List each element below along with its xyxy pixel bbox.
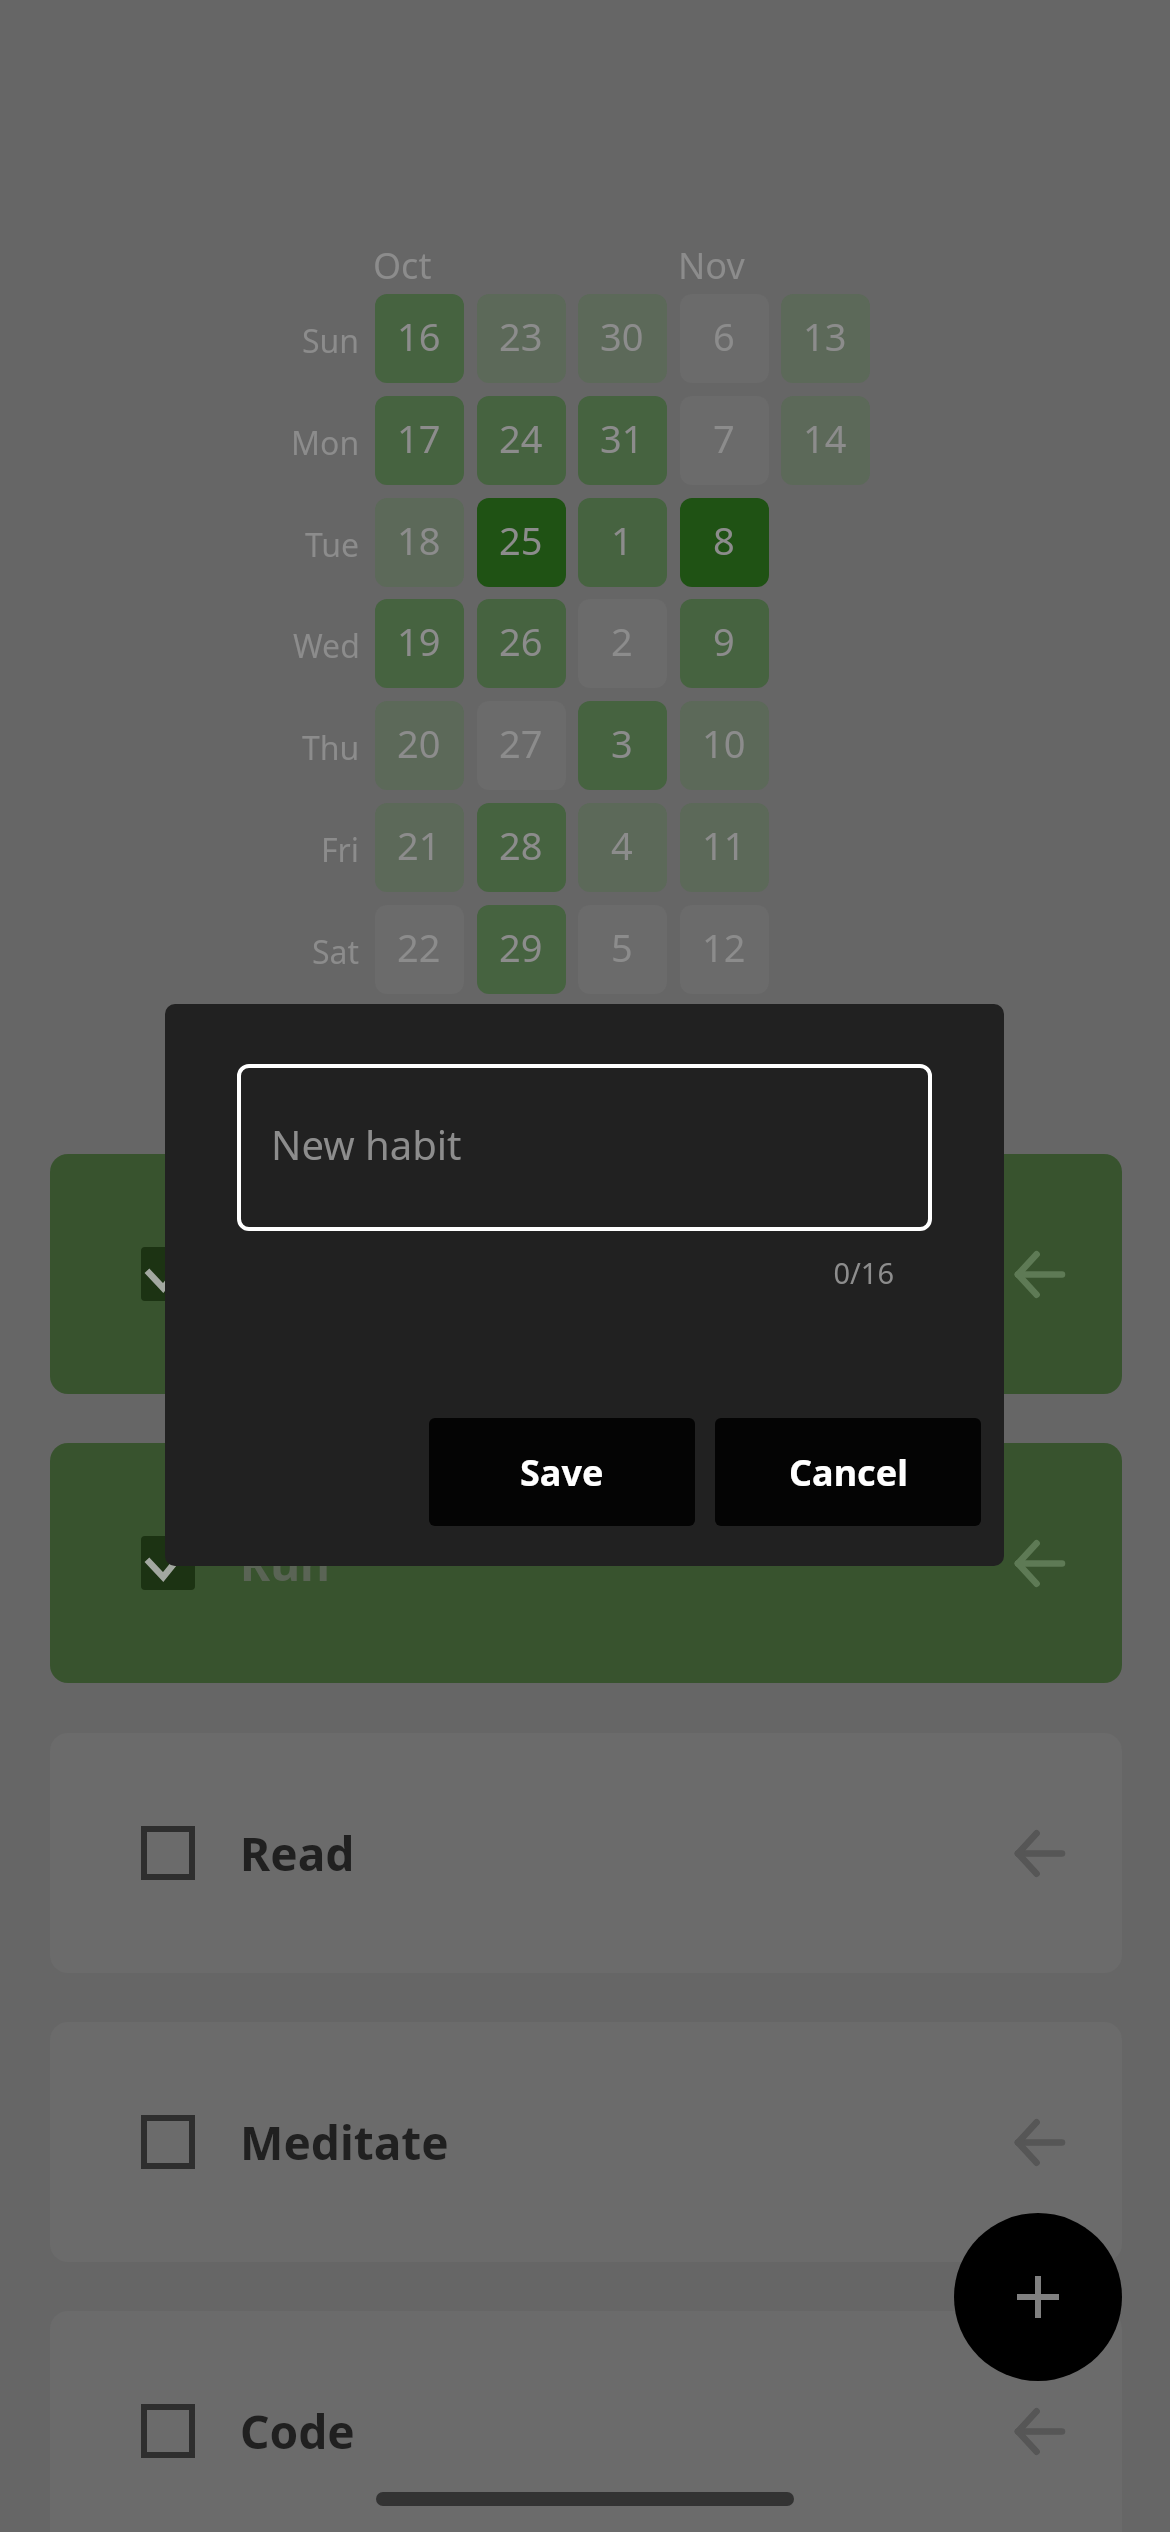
button[interactable]: Walk [50, 1154, 1122, 1394]
button[interactable]: 11 [680, 803, 769, 892]
staticText: 26 [499, 615, 543, 667]
staticText: Nov [678, 241, 745, 290]
button[interactable]: 12 [680, 905, 769, 994]
button[interactable]: 23 [477, 294, 566, 383]
button[interactable]: Read [50, 1733, 1122, 1973]
staticText: 17 [397, 412, 441, 464]
button[interactable]: Undo [1014, 1250, 1062, 1298]
staticText: 27 [499, 717, 543, 769]
staticText: Meditate [240, 2111, 449, 2174]
button[interactable]: 25 [477, 498, 566, 587]
button[interactable]: Undo [1014, 1539, 1062, 1587]
staticText: 9 [713, 615, 735, 667]
staticText: 8 [713, 514, 735, 566]
button[interactable]: 19 [375, 599, 464, 688]
button[interactable]: 13 [781, 294, 870, 383]
staticText: Thu [302, 726, 360, 770]
button[interactable]: Cancel [715, 1418, 981, 1526]
button[interactable]: 5 [578, 905, 667, 994]
button[interactable]: 31 [578, 396, 667, 485]
button[interactable]: 29 [477, 905, 566, 994]
button[interactable]: Meditate [50, 2022, 1122, 2262]
staticText: 22 [397, 921, 441, 973]
staticText: 31 [600, 412, 644, 464]
staticText: 6 [713, 310, 735, 362]
staticText: 4 [611, 819, 633, 871]
button[interactable]: 3 [578, 701, 667, 790]
staticText: 21 [397, 819, 441, 871]
staticText: 0/16 [165, 1253, 894, 1292]
button[interactable]: 26 [477, 599, 566, 688]
button[interactable]: 28 [477, 803, 566, 892]
staticText: Save [520, 1448, 604, 1497]
button[interactable]: 21 [375, 803, 464, 892]
staticText: 11 [702, 819, 746, 871]
staticText: 2 [611, 615, 633, 667]
button[interactable]: 24 [477, 396, 566, 485]
staticText: Read [240, 1822, 355, 1885]
button[interactable]: New habit [237, 1064, 932, 1231]
button[interactable]: Undo [1014, 2407, 1062, 2455]
button[interactable]: 6 [680, 294, 769, 383]
button[interactable]: 16 [375, 294, 464, 383]
staticText: 25 [499, 514, 543, 566]
button[interactable]: 1 [578, 498, 667, 587]
staticText: Sun [302, 319, 360, 363]
button[interactable]: 22 [375, 905, 464, 994]
staticText: Wed [293, 624, 360, 668]
button[interactable]: 7 [680, 396, 769, 485]
staticText: Cancel [789, 1448, 908, 1497]
staticText: 16 [397, 310, 441, 362]
button[interactable]: 18 [375, 498, 464, 587]
button[interactable]: 8 [680, 498, 769, 587]
staticText: 13 [803, 310, 847, 362]
button[interactable]: 9 [680, 599, 769, 688]
staticText: 19 [397, 615, 441, 667]
button[interactable]: 2 [578, 599, 667, 688]
button[interactable]: Undo [1014, 1829, 1062, 1877]
button[interactable]: 20 [375, 701, 464, 790]
staticText: 10 [702, 717, 746, 769]
staticText: 12 [702, 921, 746, 973]
staticText: 1 [611, 514, 633, 566]
staticText: New habit [271, 1117, 462, 1171]
button[interactable]: Run [50, 1443, 1122, 1683]
button[interactable]: Code [50, 2311, 1122, 2532]
button[interactable]: Add habit [954, 2213, 1122, 2381]
staticText: Sat [312, 930, 360, 974]
button[interactable]: Undo [1014, 2118, 1062, 2166]
staticText: Mon [291, 421, 360, 465]
staticText: Oct [373, 241, 432, 290]
staticText: Fri [321, 828, 360, 872]
staticText: 24 [499, 412, 543, 464]
staticText: 28 [499, 819, 543, 871]
staticText: 23 [499, 310, 543, 362]
staticText: 7 [713, 412, 735, 464]
staticText: 3 [611, 717, 633, 769]
button[interactable]: 30 [578, 294, 667, 383]
staticText: 18 [397, 514, 441, 566]
button[interactable]: 17 [375, 396, 464, 485]
staticText: Code [240, 2400, 355, 2463]
staticText: 29 [499, 921, 543, 973]
button[interactable]: 10 [680, 701, 769, 790]
button[interactable]: 4 [578, 803, 667, 892]
staticText: Run [240, 1532, 330, 1595]
staticText: 30 [600, 310, 644, 362]
staticText: Tue [305, 523, 360, 567]
staticText: 5 [611, 921, 633, 973]
staticText: 20 [397, 717, 441, 769]
button[interactable]: Save [429, 1418, 695, 1526]
button[interactable]: 27 [477, 701, 566, 790]
button[interactable]: 14 [781, 396, 870, 485]
staticText: 14 [803, 412, 847, 464]
